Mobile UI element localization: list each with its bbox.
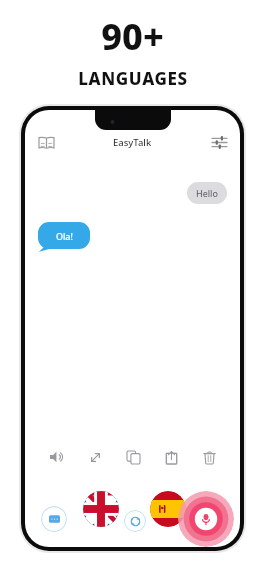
button[interactable]: Copy	[114, 442, 152, 472]
button[interactable]: Ola!	[38, 222, 90, 252]
staticText: EasyTalk	[113, 136, 152, 149]
button[interactable]: Keyboard input	[41, 506, 67, 532]
button[interactable]: Swap languages	[124, 510, 146, 532]
staticText: 90+	[101, 12, 164, 61]
button[interactable]: Share	[152, 442, 190, 472]
button[interactable]: Hold to speak	[178, 491, 234, 547]
button[interactable]: Hello	[187, 182, 227, 204]
button[interactable]: Speak	[37, 442, 76, 472]
staticText: Hello	[196, 187, 218, 199]
button[interactable]: Expand	[76, 442, 114, 472]
button[interactable]: Spanish	[150, 491, 186, 527]
button[interactable]: English	[83, 491, 119, 527]
button[interactable]: EasyTalk	[109, 134, 156, 151]
button[interactable]: Phrasebook	[33, 129, 59, 155]
button[interactable]: Delete	[190, 442, 228, 472]
staticText: Ola!	[56, 230, 73, 242]
button[interactable]: Settings	[206, 129, 232, 155]
staticText: LANGUAGES	[78, 67, 188, 90]
